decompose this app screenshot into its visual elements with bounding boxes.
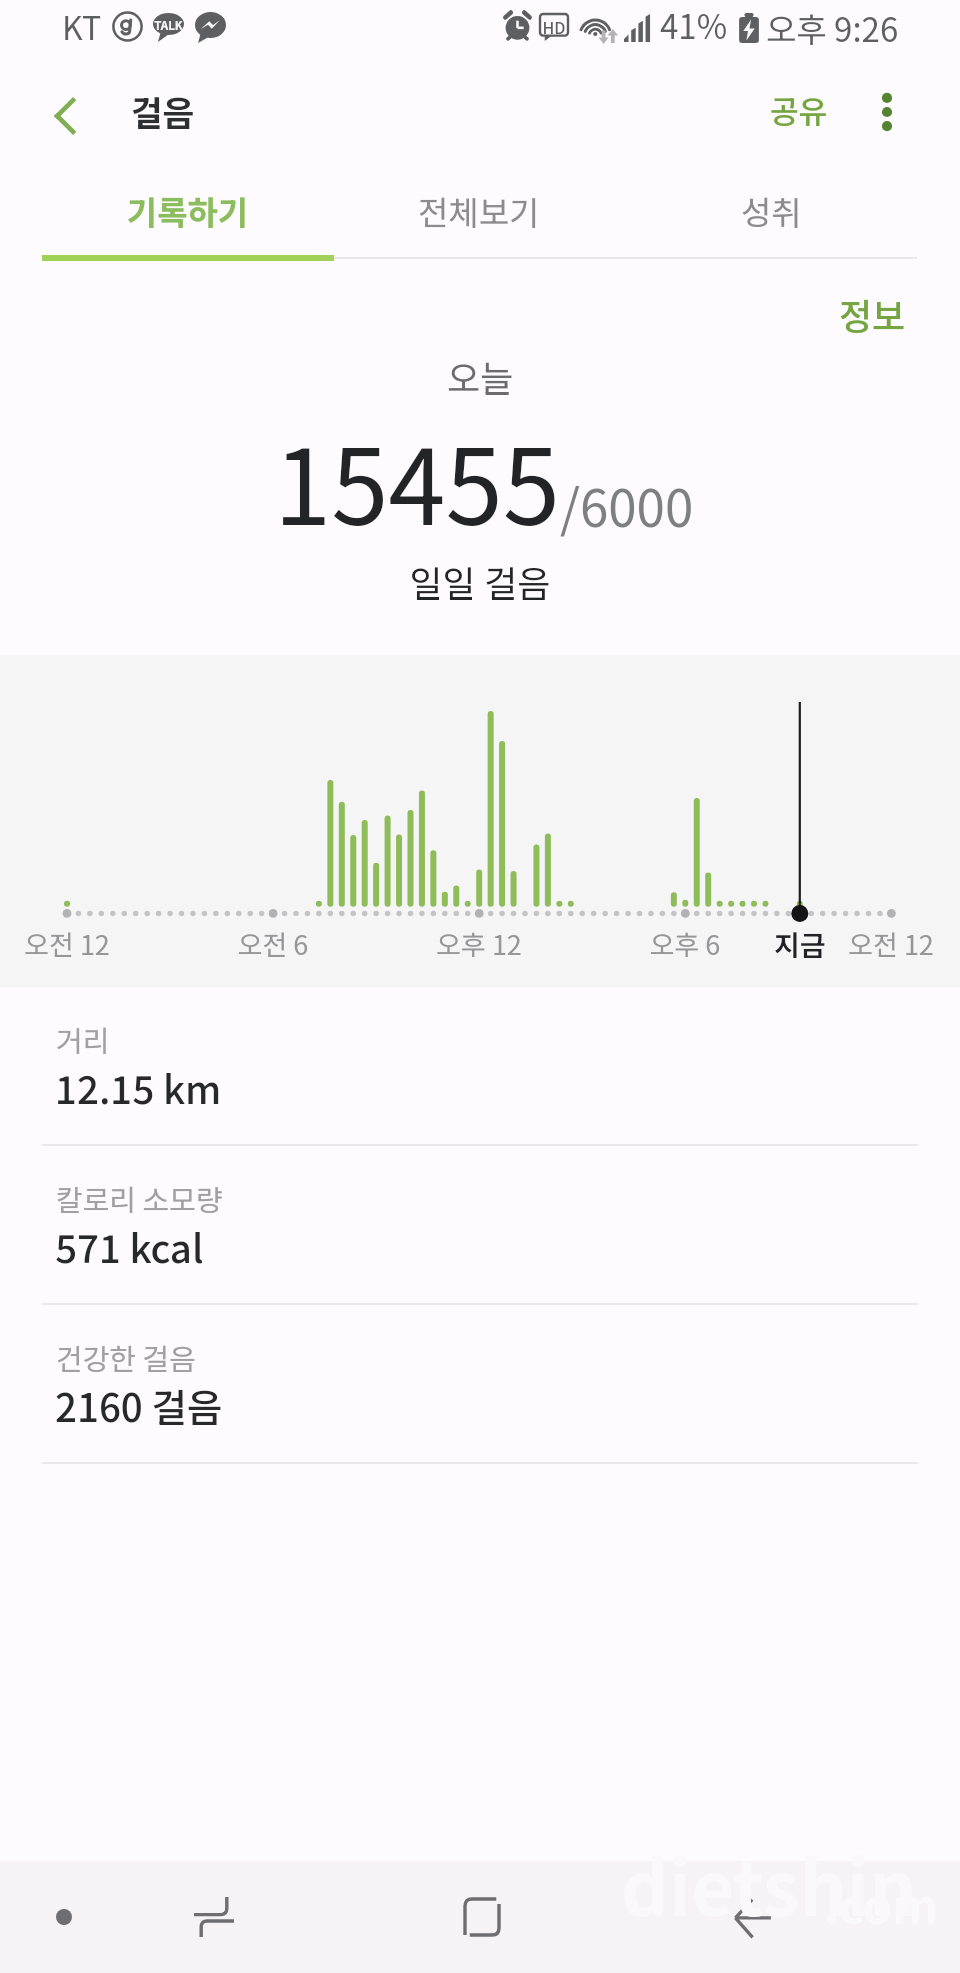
staticText: 건강한 걸음 [56,1336,196,1378]
button[interactable]: Notification dot [24,1877,104,1957]
button[interactable]: 공유 [754,73,844,146]
staticText: 12.15 km [55,1059,222,1115]
button[interactable]: 성취 [625,170,917,257]
staticText: 공유 [770,87,828,132]
staticText: 기록하기 [127,187,249,235]
button[interactable]: More options [849,74,925,150]
button[interactable]: 정보 [817,272,928,356]
staticText: 지금 [740,924,860,965]
staticText: 오후 12 [419,924,539,963]
staticText: 전체보기 [418,187,540,235]
staticText: 칼로리 소모량 [56,1177,223,1219]
staticText: TALK [153,17,184,34]
staticText: 걸음 [131,86,195,136]
staticText: dietshin [621,1830,917,1937]
button[interactable]: Recents [174,1877,254,1957]
staticText: 오전 6 [213,924,333,963]
staticText: 오전 12 [831,924,951,963]
button[interactable]: Back [710,1877,790,1957]
staticText: 15455 [274,406,560,555]
staticText: 성취 [741,187,802,235]
button[interactable]: 건강한 걸음 [0,1305,960,1464]
button[interactable]: 기록하기 [42,170,333,257]
staticText: 오늘 [0,350,960,402]
button[interactable]: 거리 [0,987,960,1146]
staticText: 오후 9:26 [766,4,899,52]
staticText: 거리 [56,1018,110,1060]
staticText: 오전 12 [7,924,127,963]
staticText: 571 kcal [55,1218,204,1274]
staticText: 41% [660,1,728,49]
staticText: /6000 [560,468,694,542]
staticText: 일일 걸음 [0,555,960,607]
button[interactable]: 칼로리 소모량 [0,1146,960,1305]
staticText: HD [540,15,568,38]
button[interactable]: 전체보기 [333,170,625,257]
button[interactable]: Back [30,80,102,152]
staticText: 2160 걸음 [55,1377,223,1433]
staticText: KT [62,3,102,49]
staticText: 정보 [839,288,906,340]
staticText: 오후 6 [625,924,745,963]
button[interactable]: Home [442,1877,522,1957]
